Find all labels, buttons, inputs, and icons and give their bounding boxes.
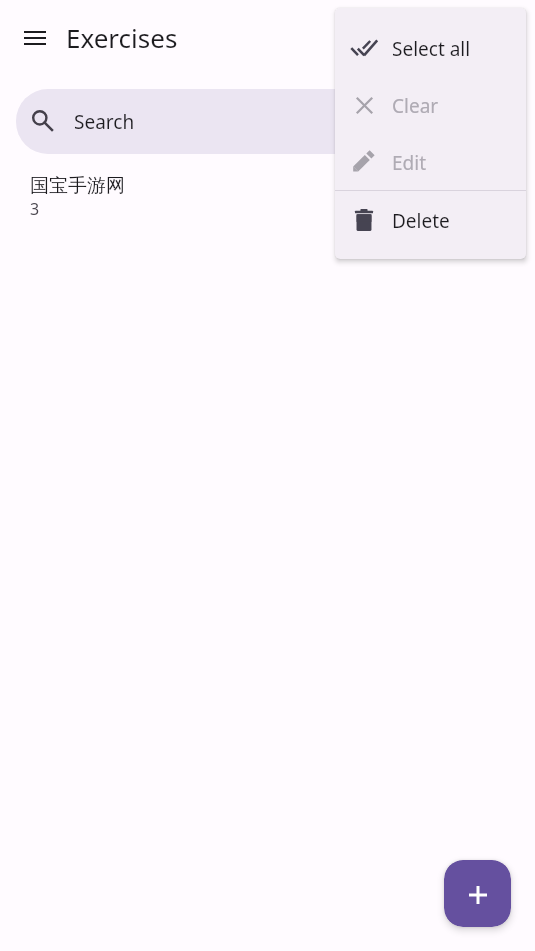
- staticText: Exercises: [66, 20, 178, 55]
- staticText: Search: [74, 109, 135, 135]
- staticText: 国宝手游网: [30, 174, 125, 198]
- button[interactable]: Add exercise: [444, 860, 511, 927]
- staticText: 3: [30, 198, 40, 220]
- button[interactable]: Edit: [335, 133, 526, 190]
- button[interactable]: Delete: [335, 191, 526, 248]
- button[interactable]: Clear: [335, 76, 526, 133]
- button[interactable]: Navigation menu: [11, 14, 59, 62]
- staticText: Edit: [392, 150, 427, 176]
- staticText: Delete: [392, 208, 450, 234]
- staticText: Select all: [392, 36, 471, 62]
- staticText: Clear: [392, 93, 439, 119]
- button[interactable]: Select all: [335, 19, 526, 76]
- button[interactable]: 国宝手游网: [0, 168, 535, 230]
- button[interactable]: Search: [16, 89, 519, 154]
